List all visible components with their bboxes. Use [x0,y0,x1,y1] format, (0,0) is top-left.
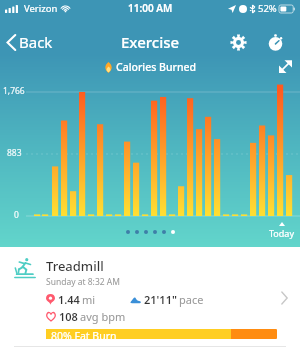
staticText: avg bpm [80,309,126,324]
staticText: 21'11" [144,292,177,307]
button[interactable]: Back [0,26,61,58]
button[interactable] [126,230,130,234]
staticText: Treadmill [46,257,104,275]
button[interactable] [171,230,175,234]
staticText: 883 [7,147,22,159]
staticText: 80% Fat Burn [51,329,117,339]
button[interactable] [144,230,148,234]
staticText: 0 [14,209,19,221]
staticText: Today [269,227,294,239]
button[interactable] [135,230,139,234]
button[interactable]: Stopwatch [261,28,290,57]
staticText: Exercise [121,32,180,52]
staticText: 11:00 AM [128,1,173,15]
button[interactable]: Expand chart [271,55,300,78]
staticText: 1,766 [3,85,25,97]
staticText: Back [19,32,53,52]
staticText: Verizon [24,2,58,15]
button[interactable] [153,230,157,234]
staticText: 52% [258,2,277,15]
staticText: pace [179,292,204,307]
button[interactable]: Settings [224,28,253,57]
staticText: Sunday at 8:32 AM [46,276,120,288]
staticText: 1.44 [58,292,80,307]
staticText: mi [82,292,96,307]
staticText: Calories Burned [116,60,197,74]
staticText: 108 [59,309,78,324]
button[interactable] [162,230,166,234]
button[interactable]: Treadmill [0,247,300,347]
